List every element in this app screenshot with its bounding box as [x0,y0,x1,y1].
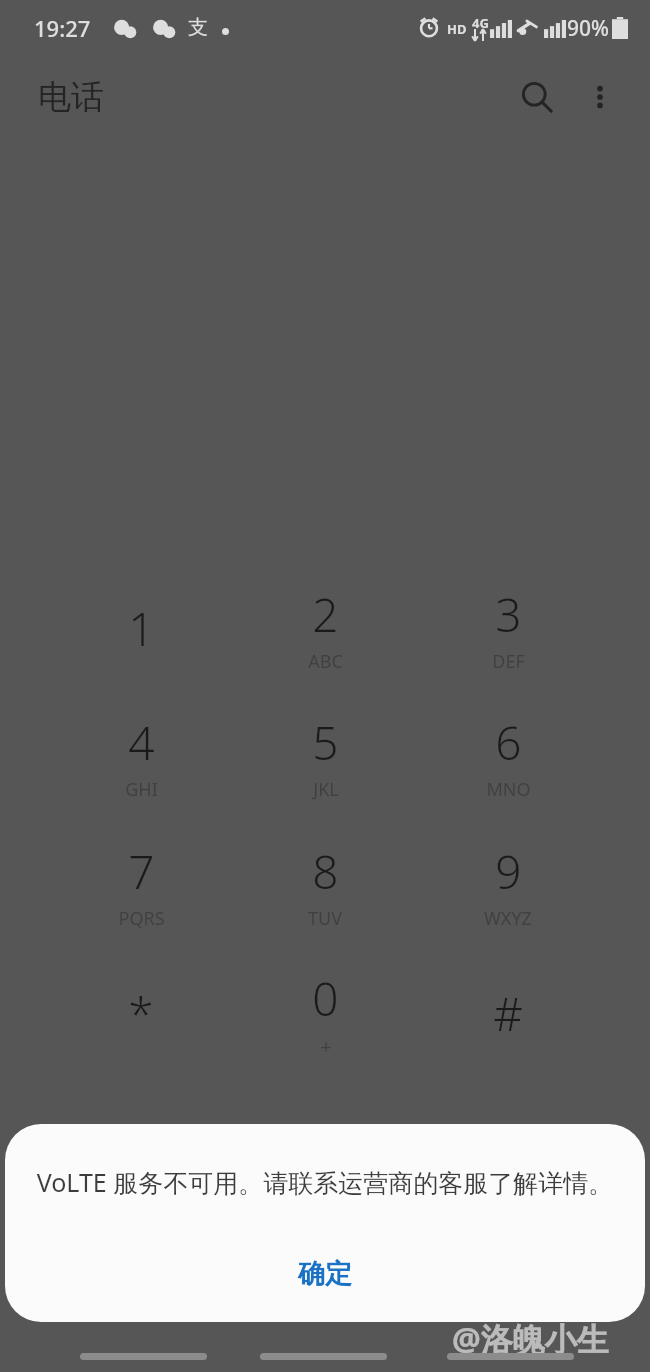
staticText: ABC [308,649,343,674]
staticText: 9 [495,840,522,903]
staticText: 2 [312,583,339,646]
button[interactable]: # [433,953,583,1073]
staticText: DEF [492,649,525,674]
staticText: HD [447,20,467,38]
staticText: VoLTE 服务不可用。请联系运营商的客服了解详情。 [27,1165,623,1199]
button[interactable]: 6 [433,696,583,816]
staticText: MNO [486,777,531,802]
staticText: 1 [128,597,155,660]
button[interactable]: 9 [433,825,583,945]
button[interactable]: 7 [66,825,216,945]
button[interactable]: 2 [250,568,400,688]
staticText: 确定 [298,1257,352,1291]
button[interactable]: 8 [250,825,400,945]
staticText: 0 [312,967,339,1030]
staticText: 90% [567,14,609,43]
staticText: TUV [308,906,342,931]
button[interactable]: 3 [433,568,583,688]
staticText: 7 [128,840,155,903]
staticText: * [128,982,154,1045]
button[interactable]: 5 [250,696,400,816]
staticText: PQRS [118,906,165,931]
staticText: @洛魄小生 [452,1317,609,1361]
staticText: WXYZ [484,906,532,931]
staticText: # [493,982,523,1045]
staticText: + [320,1033,332,1060]
staticText: GHI [125,777,158,802]
staticText: 19:27 [34,13,91,43]
staticText: 支 [188,15,208,40]
staticText: 4G [472,14,489,32]
button[interactable]: 4 [66,696,216,816]
button[interactable]: * [66,953,216,1073]
button[interactable]: More options [572,69,628,125]
button[interactable]: Search [509,69,565,125]
staticText: 5 [312,711,339,774]
staticText: 4 [128,711,155,774]
staticText: JKL [313,777,339,802]
button[interactable]: 0 [250,953,400,1073]
button[interactable]: 1 [66,568,216,688]
button[interactable] [447,1353,574,1360]
staticText: 电话 [38,76,104,118]
button[interactable] [80,1353,207,1360]
staticText: 8 [312,840,339,903]
staticText: 6 [495,711,522,774]
button[interactable]: 确定 [235,1242,415,1306]
staticText: 3 [495,583,522,646]
button[interactable] [260,1353,387,1360]
